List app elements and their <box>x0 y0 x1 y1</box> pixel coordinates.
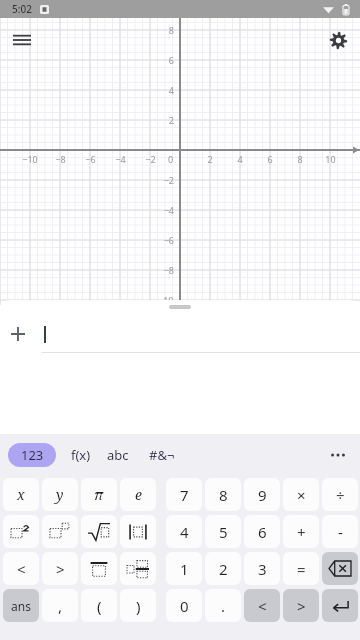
button[interactable]: x <box>3 478 39 511</box>
button[interactable]: Power <box>42 515 78 548</box>
button[interactable]: 9 <box>244 478 280 511</box>
staticText: 2 <box>219 559 228 579</box>
staticText: −4 <box>163 204 174 216</box>
staticText: 3 <box>258 559 267 579</box>
staticText: 8 <box>168 24 174 36</box>
button[interactable]: 8 <box>205 478 241 511</box>
staticText: 8 <box>297 153 303 165</box>
staticText: > <box>56 559 65 579</box>
button[interactable]: 6 <box>244 515 280 548</box>
button[interactable]: 123 <box>8 443 56 467</box>
button[interactable]: = <box>283 552 319 585</box>
button[interactable]: #&¬ <box>143 443 181 467</box>
button[interactable]: f(x) <box>62 443 100 467</box>
staticText: 5 <box>219 522 228 542</box>
button[interactable]: ÷ <box>322 478 358 511</box>
staticText: abc <box>107 446 129 464</box>
staticText: −2 <box>145 153 156 165</box>
button[interactable]: Square root <box>81 515 117 548</box>
staticText: 4 <box>180 522 189 542</box>
staticText: > <box>297 596 306 616</box>
button[interactable]: 4 <box>166 515 202 548</box>
staticText: −6 <box>85 153 96 165</box>
staticText: 0 <box>180 596 189 616</box>
button[interactable]: Add input row <box>6 322 30 346</box>
staticText: #&¬ <box>149 446 175 464</box>
staticText: 8 <box>219 485 228 505</box>
button[interactable]: > <box>283 589 319 622</box>
button[interactable]: > <box>42 552 78 585</box>
button[interactable]: < <box>244 589 280 622</box>
button[interactable]: ( <box>81 589 117 622</box>
staticText: −6 <box>163 234 174 246</box>
button[interactable]: 5 <box>205 515 241 548</box>
button[interactable]: 0 <box>166 589 202 622</box>
button[interactable]: ) <box>120 589 156 622</box>
staticText: 5:02 <box>12 2 32 16</box>
staticText: 6 <box>258 522 267 542</box>
button[interactable]: Menu <box>6 24 38 56</box>
staticText: −4 <box>115 153 126 165</box>
staticText: 2 <box>168 114 174 126</box>
staticText: - <box>338 522 343 542</box>
button[interactable]: + <box>283 515 319 548</box>
staticText: . <box>221 596 226 616</box>
staticText: −10 <box>22 153 38 165</box>
staticText: 6 <box>168 54 174 66</box>
button[interactable]: 7 <box>166 478 202 511</box>
button[interactable]: y <box>42 478 78 511</box>
button[interactable]: Backspace <box>322 552 358 585</box>
staticText: 4 <box>168 84 174 96</box>
button[interactable]: × <box>283 478 319 511</box>
staticText: = <box>297 559 306 579</box>
button[interactable]: Enter <box>322 589 358 622</box>
staticText: 1 <box>180 559 189 579</box>
staticText: ( <box>97 596 102 616</box>
staticText: e <box>135 485 142 504</box>
staticText: ) <box>136 596 141 616</box>
staticText: x <box>17 485 25 504</box>
staticText: < <box>258 596 267 616</box>
staticText: 6 <box>267 153 273 165</box>
button[interactable]: Fraction <box>81 552 117 585</box>
button[interactable]: Square <box>3 515 39 548</box>
staticText: 0 <box>168 153 174 165</box>
staticText: 2 <box>207 153 213 165</box>
staticText: × <box>297 485 306 505</box>
button[interactable]: 3 <box>244 552 280 585</box>
staticText: 123 <box>21 446 44 464</box>
staticText: + <box>297 522 306 542</box>
button[interactable]: More options <box>326 443 350 467</box>
button[interactable]: . <box>205 589 241 622</box>
staticText: −8 <box>55 153 66 165</box>
staticText: y <box>56 485 64 504</box>
button[interactable]: π <box>81 478 117 511</box>
staticText: π <box>94 485 104 504</box>
staticText: , <box>58 596 63 616</box>
staticText: −2 <box>163 174 174 186</box>
button[interactable]: 2 <box>205 552 241 585</box>
staticText: 10 <box>325 153 336 165</box>
button[interactable]: e <box>120 478 156 511</box>
staticText: ÷ <box>336 485 345 505</box>
staticText: ans <box>11 598 31 614</box>
staticText: < <box>17 559 26 579</box>
button[interactable]: Settings <box>322 24 354 56</box>
button[interactable]: < <box>3 552 39 585</box>
staticText: f(x) <box>71 446 91 464</box>
button[interactable]: 1 <box>166 552 202 585</box>
staticText: 7 <box>180 485 189 505</box>
button[interactable]: - <box>322 515 358 548</box>
button[interactable]: , <box>42 589 78 622</box>
button[interactable]: abc <box>99 443 137 467</box>
staticText: 9 <box>258 485 267 505</box>
staticText: −10 <box>158 294 174 306</box>
staticText: 4 <box>237 153 243 165</box>
button[interactable]: ans <box>3 589 39 622</box>
staticText: −8 <box>163 264 174 276</box>
button[interactable]: Absolute value <box>120 515 156 548</box>
button[interactable]: Mixed fraction <box>120 552 156 585</box>
